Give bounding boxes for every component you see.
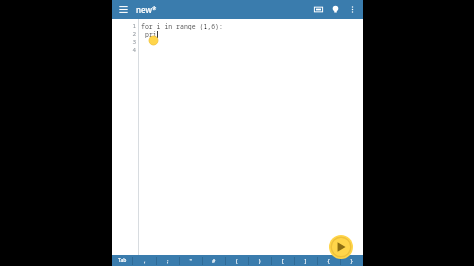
button[interactable]: Open navigation menu bbox=[115, 1, 132, 18]
button[interactable]: } bbox=[341, 255, 363, 266]
button[interactable]: { bbox=[318, 255, 340, 266]
staticText: pri bbox=[145, 30, 157, 38]
button[interactable]: ) bbox=[249, 255, 271, 266]
staticText: ) bbox=[258, 257, 262, 264]
button[interactable]: ] bbox=[295, 255, 317, 266]
staticText: # bbox=[212, 257, 216, 264]
button[interactable]: Run bbox=[329, 235, 353, 259]
button[interactable]: " bbox=[180, 255, 202, 266]
staticText: new* bbox=[136, 4, 157, 15]
button[interactable]: ( bbox=[226, 255, 248, 266]
button[interactable]: Open file bbox=[310, 1, 327, 18]
staticText: for i in range (1,6): bbox=[141, 22, 223, 30]
button[interactable]: Hints bbox=[327, 1, 344, 18]
button[interactable]: , bbox=[133, 255, 156, 266]
button[interactable]: 1 bbox=[112, 19, 363, 255]
staticText: ( bbox=[235, 257, 239, 264]
staticText: { bbox=[327, 257, 331, 264]
staticText: 1 bbox=[132, 22, 136, 30]
button[interactable]: Tab bbox=[112, 255, 132, 266]
button[interactable]: More options bbox=[344, 1, 361, 18]
staticText: 2 bbox=[132, 30, 136, 38]
button[interactable]: [ bbox=[272, 255, 294, 266]
staticText: 4 bbox=[132, 46, 136, 54]
staticText: , bbox=[143, 257, 147, 264]
staticText: Tab bbox=[118, 257, 127, 264]
staticText: ] bbox=[304, 257, 308, 264]
staticText: } bbox=[350, 257, 354, 264]
staticText: [ bbox=[281, 257, 285, 264]
staticText: " bbox=[189, 257, 193, 264]
button[interactable]: # bbox=[203, 255, 225, 266]
staticText: ; bbox=[166, 257, 170, 264]
staticText: 3 bbox=[132, 38, 136, 46]
button[interactable]: ; bbox=[157, 255, 179, 266]
